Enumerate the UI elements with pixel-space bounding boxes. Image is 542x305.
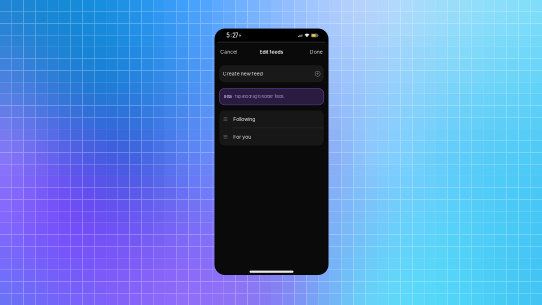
staticText: · Tap and drag to reorder feeds.: [232, 94, 285, 99]
staticText: Cancel: [220, 49, 237, 55]
staticText: Edit feeds: [259, 49, 283, 55]
staticText: Create new feed: [223, 71, 263, 77]
button[interactable]: For you: [219, 128, 324, 145]
button[interactable]: Following: [219, 110, 324, 128]
staticText: For you: [233, 134, 251, 140]
staticText: Beta: [224, 94, 232, 99]
staticText: 5:27: [226, 32, 238, 39]
staticText: Done: [310, 49, 323, 55]
button[interactable]: Cancel: [219, 47, 239, 57]
button[interactable]: Create new feed: [219, 65, 324, 82]
staticText: Following: [233, 116, 255, 122]
button[interactable]: Done: [308, 47, 324, 57]
